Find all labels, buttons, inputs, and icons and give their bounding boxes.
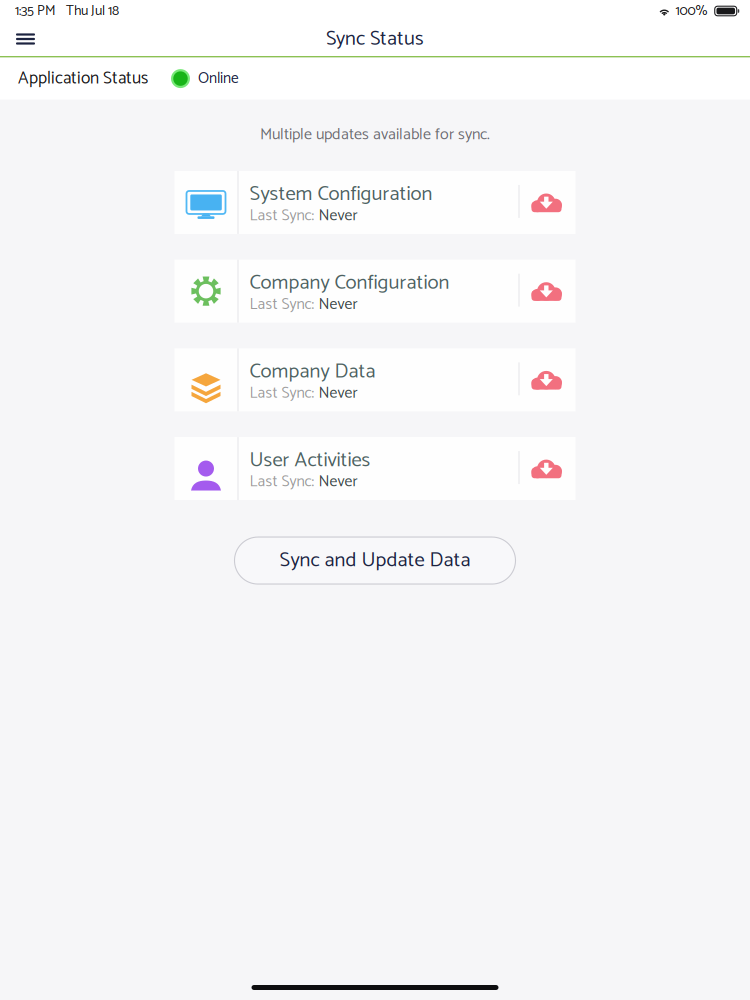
button[interactable]: System Configuration bbox=[174, 171, 575, 234]
staticText: Never bbox=[318, 292, 357, 317]
staticText: Thu Jul 18 bbox=[66, 0, 119, 22]
staticText: Never bbox=[318, 469, 357, 495]
button[interactable]: Company Configuration bbox=[174, 260, 575, 323]
staticText: System Configuration bbox=[249, 177, 432, 211]
button[interactable]: Company Data bbox=[174, 348, 575, 411]
staticText: User Activities bbox=[249, 443, 370, 477]
button[interactable]: User Activities bbox=[174, 437, 575, 500]
button[interactable]: Menu bbox=[0, 22, 51, 56]
staticText: Multiple updates available for sync. bbox=[260, 122, 490, 148]
staticText: Never bbox=[318, 203, 357, 229]
staticText: Application Status bbox=[18, 64, 148, 93]
staticText: Last Sync: bbox=[249, 469, 318, 495]
staticText: Company Configuration bbox=[249, 266, 449, 300]
staticText: 100% bbox=[675, 0, 707, 22]
button[interactable]: Sync and Update Data bbox=[234, 537, 515, 584]
staticText: Online bbox=[198, 66, 239, 91]
staticText: Never bbox=[318, 380, 357, 406]
staticText: Sync Status bbox=[326, 22, 424, 56]
staticText: Company Data bbox=[249, 355, 375, 388]
staticText: Last Sync: bbox=[249, 380, 318, 406]
staticText: 1:35 PM bbox=[15, 0, 56, 22]
staticText: Sync and Update Data bbox=[279, 544, 470, 577]
staticText: Last Sync: bbox=[249, 203, 318, 229]
staticText: Last Sync: bbox=[249, 292, 318, 317]
